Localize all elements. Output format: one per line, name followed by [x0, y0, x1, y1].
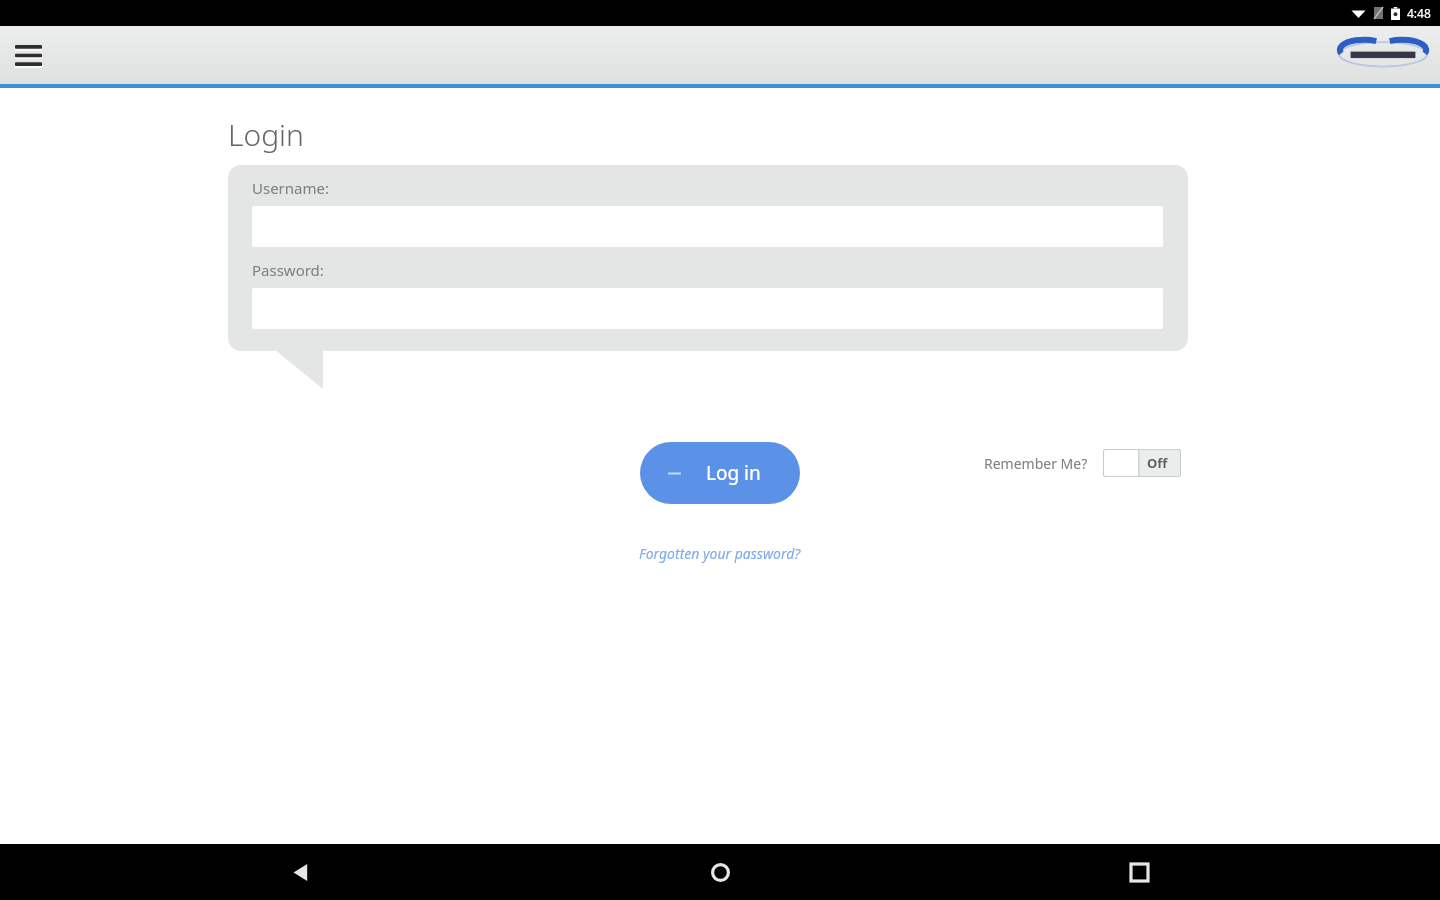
staticText: Forgotten your password? — [639, 544, 801, 563]
staticText: Username: — [252, 178, 329, 198]
button[interactable]: Forgotten your password? — [639, 544, 801, 563]
staticText: Login — [228, 114, 304, 155]
button[interactable]: Home — [692, 844, 748, 900]
button[interactable]: Remember Me, Off — [1103, 449, 1181, 477]
staticText: 4:48 — [1407, 5, 1431, 21]
staticText: Password: — [252, 260, 324, 280]
button[interactable]: Recent apps — [1111, 844, 1167, 900]
button[interactable]: Log in — [640, 442, 800, 504]
button[interactable]: Company logo — [1338, 38, 1428, 72]
staticText: Remember Me? — [984, 454, 1088, 473]
button[interactable]: Back — [273, 844, 329, 900]
button[interactable]: Open navigation menu — [4, 31, 52, 79]
staticText: Log in — [706, 460, 761, 486]
staticText: Off — [1147, 454, 1168, 472]
